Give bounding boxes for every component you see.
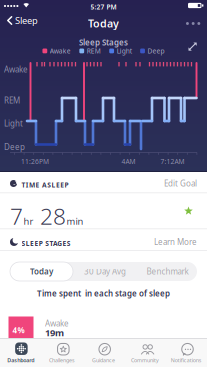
button[interactable]: 30 Day Avg (74, 262, 136, 281)
staticText: REM (4, 95, 20, 106)
button[interactable]: Dashboard (0, 339, 41, 367)
staticText: 7:12AM (160, 157, 184, 166)
staticText: SLEEP STAGES (21, 239, 71, 248)
staticText: Learn More (154, 237, 197, 247)
staticText: TIME ASLEEP (21, 180, 68, 189)
staticText: Awake (45, 318, 69, 329)
staticText: hr (23, 215, 33, 227)
button[interactable]: Edit Goal (137, 174, 197, 193)
staticText: 19m (45, 326, 64, 339)
button[interactable]: Today (10, 262, 73, 281)
staticText: Deep (4, 141, 25, 152)
staticText: Light (117, 46, 132, 55)
staticText: 11:26PM (21, 157, 49, 166)
button[interactable]: Notifications (166, 339, 207, 367)
button[interactable]: Sleep (7, 11, 38, 30)
staticText: Awake (4, 64, 28, 75)
staticText: 4% (12, 325, 24, 335)
staticText: min (66, 215, 83, 227)
button[interactable]: Learn More (137, 232, 197, 251)
staticText: REM (87, 46, 101, 55)
button[interactable] (186, 17, 200, 29)
staticText: Awake (50, 46, 71, 55)
button[interactable]: Community (124, 339, 166, 367)
staticText: Challenges (49, 357, 75, 364)
staticText: Sleep (15, 14, 38, 27)
staticText: Sleep Stages (79, 37, 128, 48)
staticText: Benchmark (146, 266, 188, 277)
button[interactable]: Benchmark (136, 262, 198, 281)
staticText: Time spent in each stage of sleep (37, 288, 170, 299)
button[interactable]: Guidance (83, 339, 124, 367)
button[interactable]: Challenges (41, 339, 83, 367)
staticText: Today (88, 16, 119, 30)
staticText: Today (30, 266, 53, 277)
staticText: Notifications (171, 357, 202, 364)
staticText: 5:27 PM (90, 2, 116, 11)
staticText: Guidance (92, 357, 115, 364)
staticText: Deep (148, 46, 165, 55)
staticText: 30 Day Avg (84, 266, 126, 277)
button[interactable] (187, 41, 198, 52)
staticText: Community (131, 357, 159, 364)
staticText: 7 (10, 201, 23, 231)
staticText: Edit Goal (164, 178, 197, 189)
staticText: Light (4, 118, 23, 129)
staticText: Dashboard (7, 357, 34, 364)
staticText: 28 (34, 201, 66, 231)
staticText: 4AM (121, 157, 135, 166)
